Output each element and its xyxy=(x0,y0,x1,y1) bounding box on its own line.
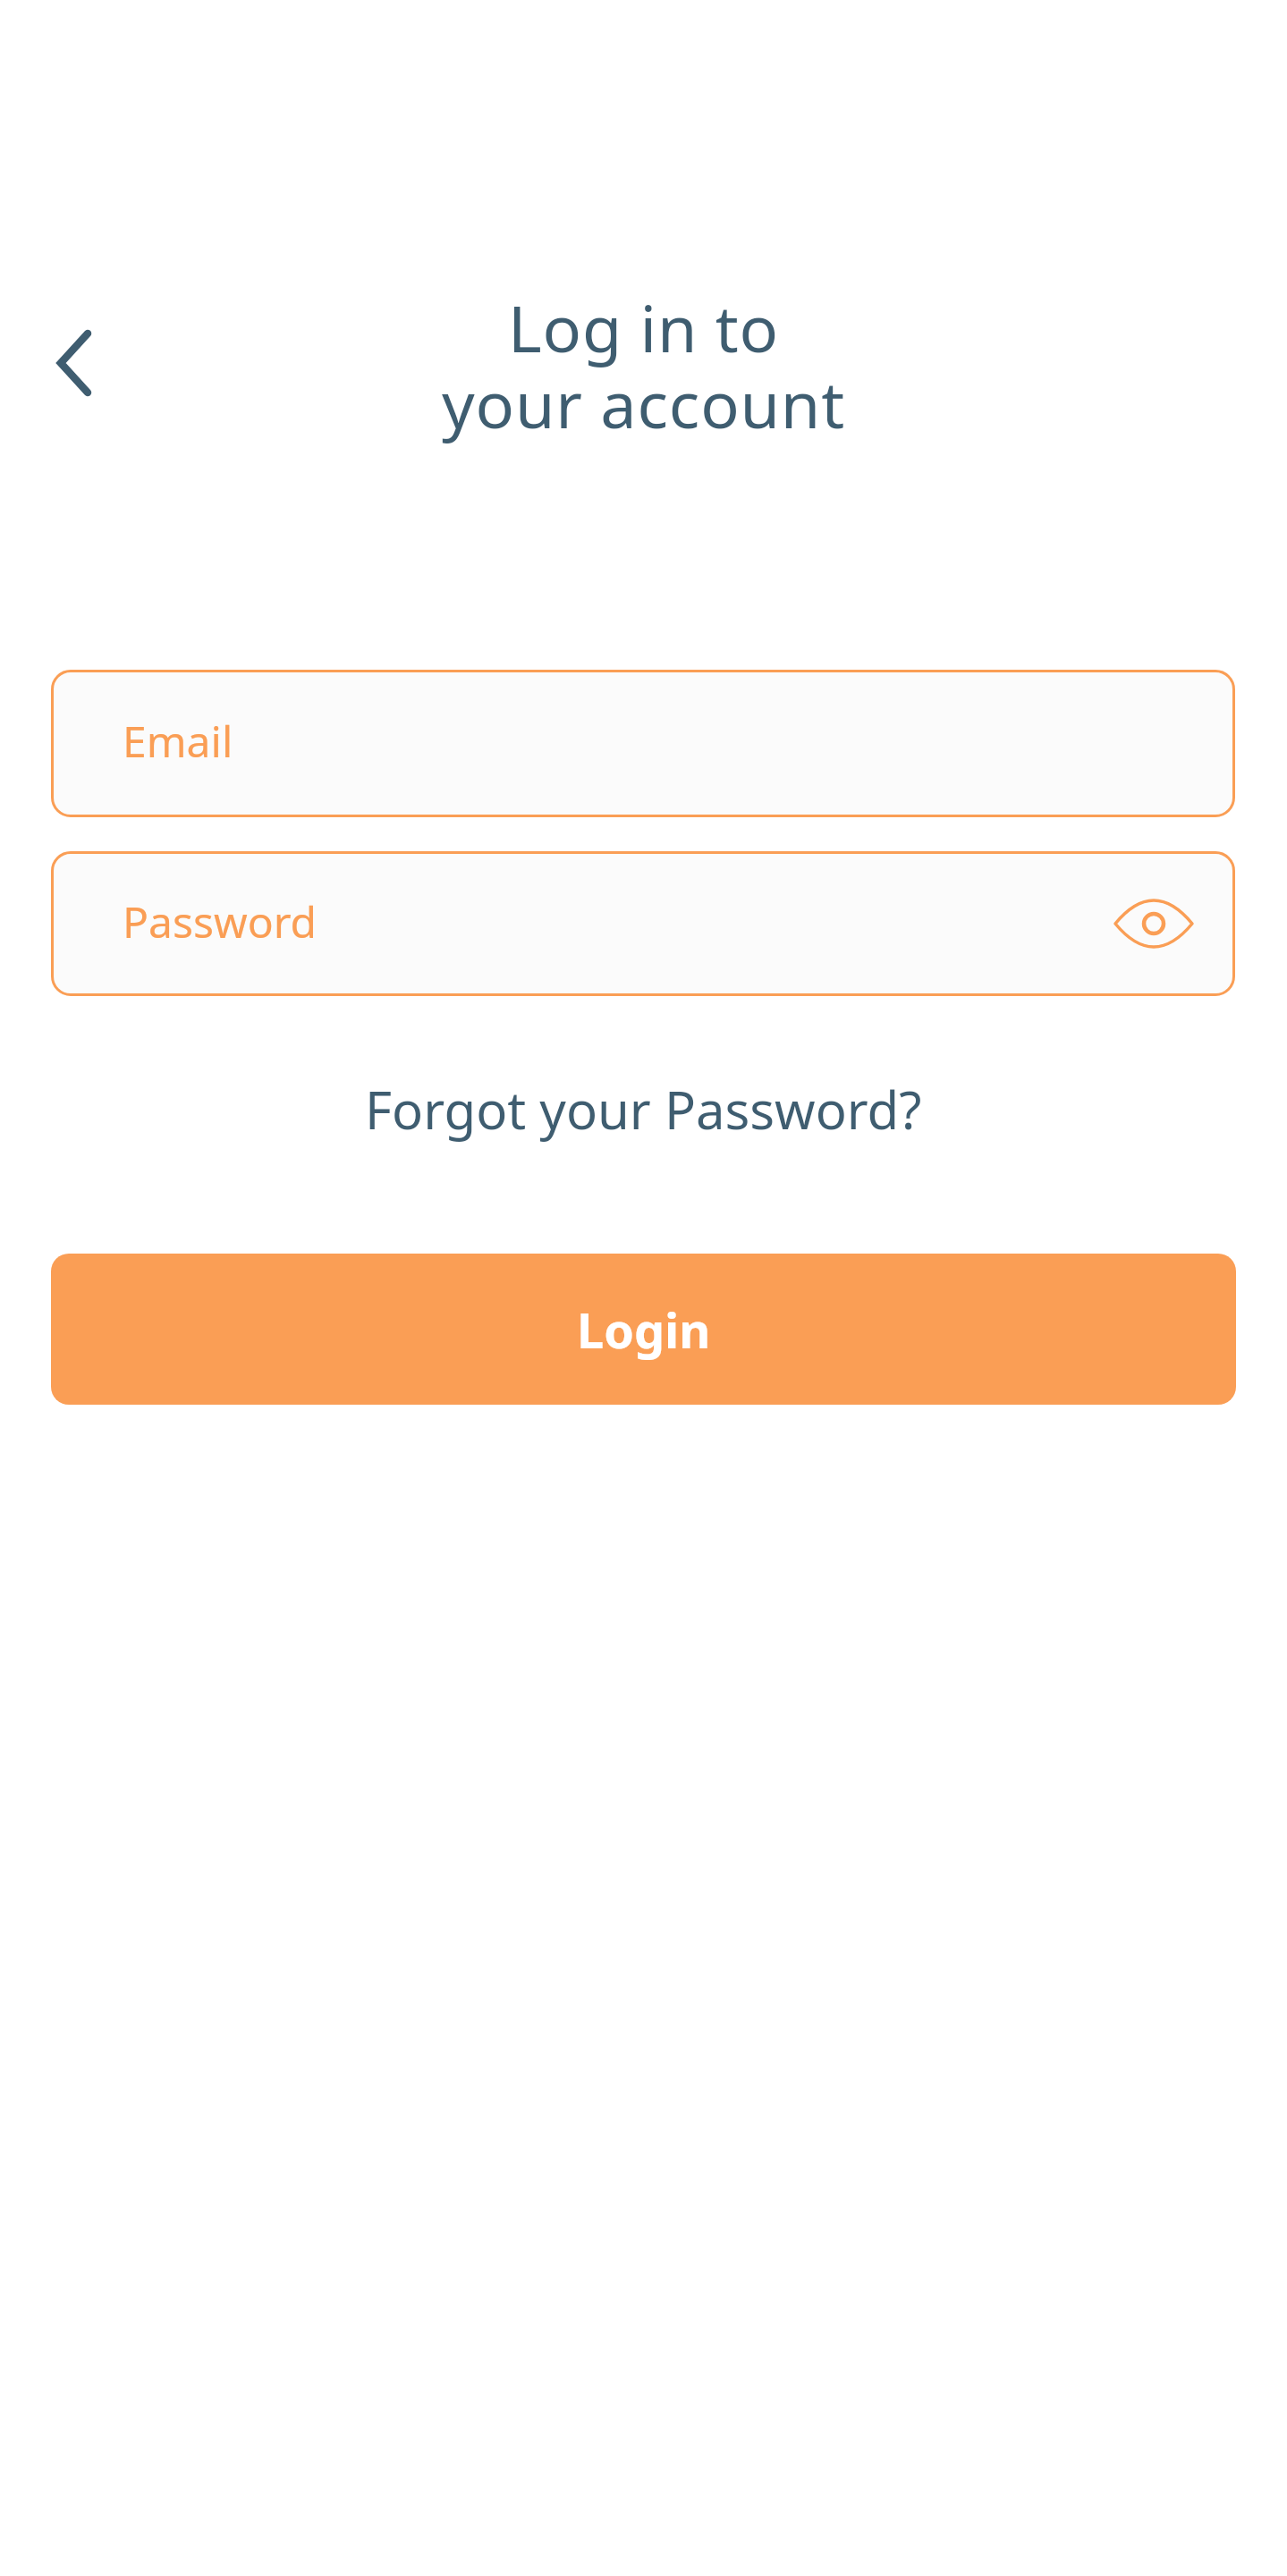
button[interactable]: Email xyxy=(51,670,1235,817)
staticText: Log in to your account xyxy=(0,283,1287,448)
staticText: Password xyxy=(123,892,318,950)
button[interactable]: Forgot your Password? xyxy=(365,1074,922,1144)
button[interactable]: Password xyxy=(51,851,1235,996)
button[interactable] xyxy=(25,305,123,421)
staticText: Forgot your Password? xyxy=(365,1074,922,1144)
button[interactable]: Login xyxy=(51,1254,1236,1405)
staticText: Email xyxy=(123,712,233,770)
staticText: Login xyxy=(577,1296,711,1363)
